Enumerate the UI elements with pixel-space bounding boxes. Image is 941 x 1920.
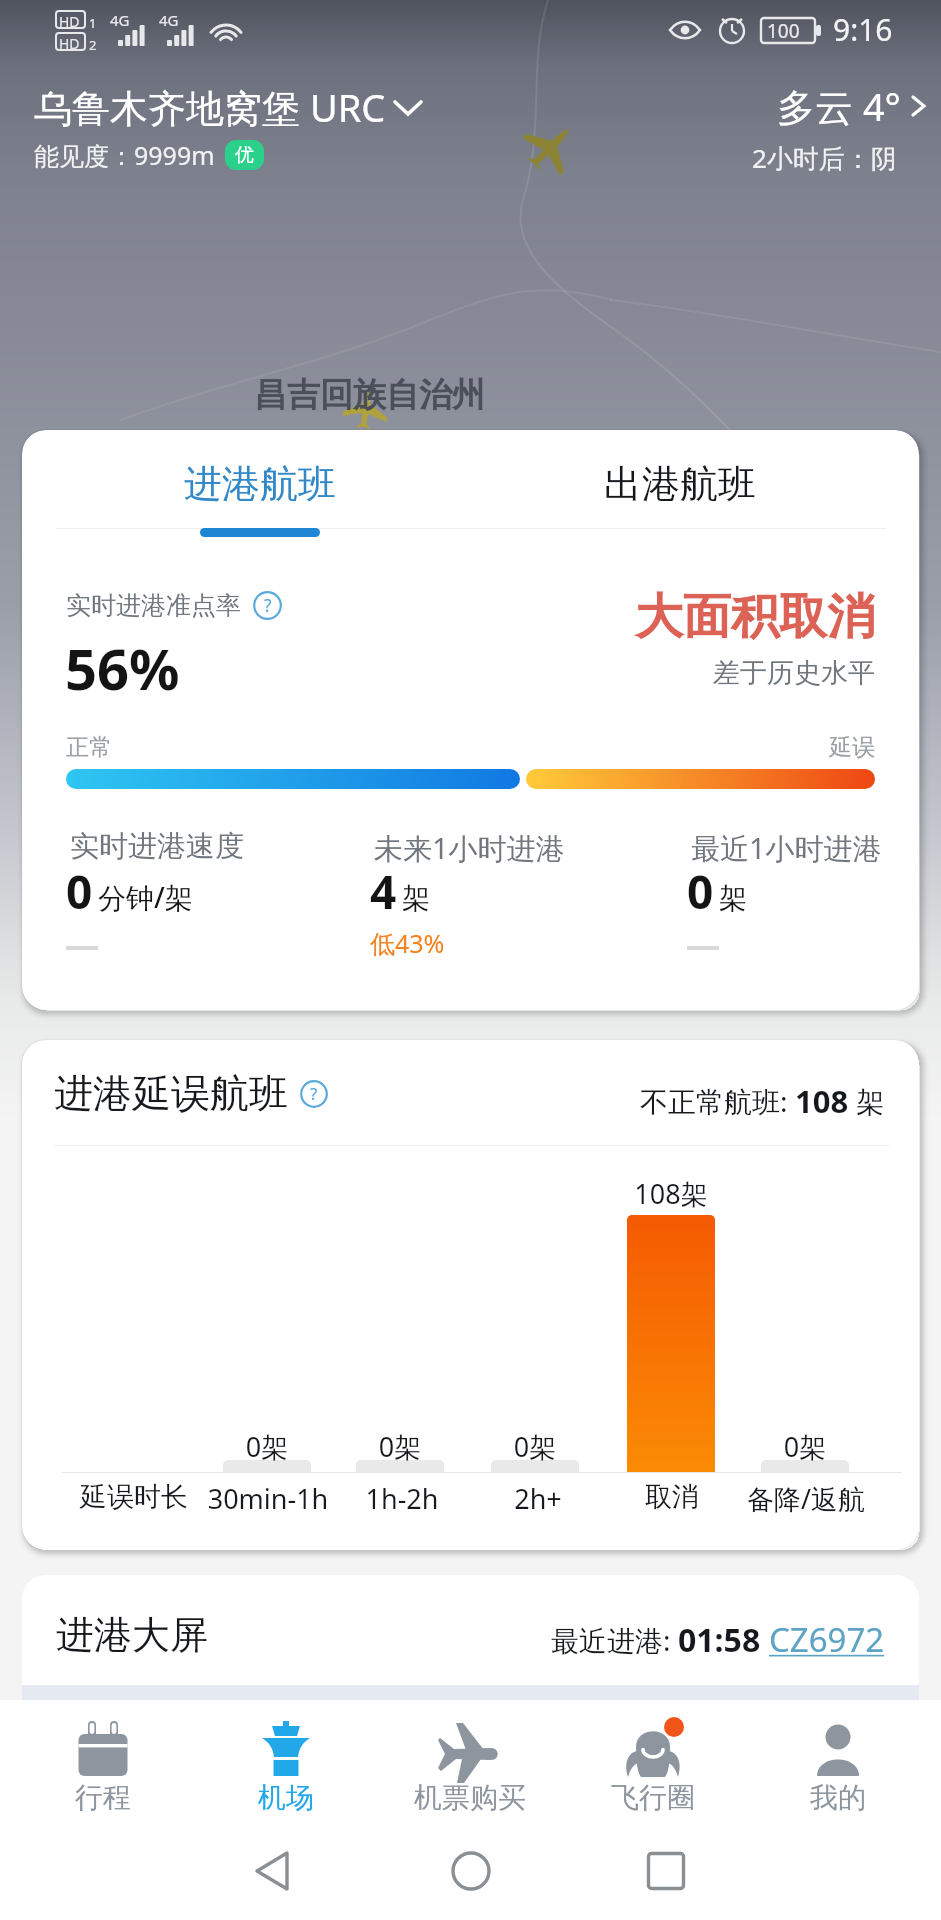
staticText: 4 [370, 860, 397, 923]
button[interactable] [9, 1700, 197, 1830]
staticText: 30min-1h [188, 1480, 348, 1517]
staticText: 最近进港: [551, 1621, 678, 1659]
staticText: 2h+ [458, 1480, 618, 1517]
staticText: 机场 [186, 1780, 386, 1815]
staticText: 能见度：9999m [34, 138, 215, 172]
staticText: 架 [719, 881, 747, 916]
button[interactable]: Home [436, 1836, 506, 1906]
staticText: 不正常航班: [640, 1082, 795, 1120]
staticText: 架 [849, 1082, 885, 1120]
staticText: 昌吉回族自治州 [254, 374, 485, 416]
staticText: 机票购买 [370, 1780, 570, 1815]
staticText: 108 [795, 1080, 849, 1122]
staticText: 1 [89, 14, 97, 32]
staticText: 进港航班 [180, 460, 340, 508]
staticText: HD [59, 34, 80, 53]
staticText: 飞行圈 [553, 1780, 753, 1815]
staticText: 延误时长 [54, 1480, 214, 1514]
staticText: 0架 [471, 1428, 599, 1465]
staticText: 差于历史水平 [575, 656, 875, 690]
staticText: 1h-2h [322, 1480, 482, 1517]
staticText: 2小时后：阴 [752, 140, 897, 176]
staticText: 0 [66, 860, 93, 923]
button[interactable] [376, 1700, 564, 1830]
staticText: HD [59, 12, 80, 31]
staticText: 进港大屏 [56, 1611, 208, 1659]
staticText: 低43% [370, 926, 445, 960]
button[interactable] [22, 430, 470, 530]
staticText: ? [264, 593, 272, 617]
staticText: 01:58 [678, 1618, 761, 1662]
staticText: 正常 [66, 733, 112, 762]
staticText: 未来1小时进港 [374, 828, 565, 868]
button[interactable]: Back [238, 1836, 308, 1906]
staticText: 9:16 [833, 9, 893, 50]
staticText: 多云 4° [777, 80, 901, 132]
staticText: 优 [235, 143, 254, 167]
staticText: 行程 [3, 1780, 203, 1815]
staticText: 4G [110, 10, 130, 30]
button[interactable] [744, 1700, 932, 1830]
staticText: 108架 [607, 1175, 735, 1212]
staticText: 进港延误航班 [54, 1069, 288, 1118]
staticText: 大面积取消 [575, 587, 875, 647]
staticText: 实时进港速度 [70, 828, 244, 865]
staticText: 分钟/架 [98, 878, 193, 916]
staticText: ? [310, 1082, 318, 1105]
staticText: 取消 [592, 1480, 752, 1514]
staticText: 56% [65, 630, 180, 706]
staticText: 最近1小时进港 [691, 828, 882, 868]
staticText: 4G [159, 10, 179, 30]
staticText: 延误 [780, 733, 875, 762]
staticText: 实时进港准点率 [66, 590, 241, 621]
staticText: 我的 [738, 1780, 938, 1815]
staticText: 100 [767, 18, 800, 44]
button[interactable] [471, 430, 919, 530]
staticText: CZ6972 [769, 1617, 885, 1662]
staticText: 2 [89, 36, 97, 54]
staticText: 0架 [203, 1428, 331, 1465]
staticText: 架 [402, 881, 430, 916]
button[interactable] [192, 1700, 380, 1830]
staticText: 备降/返航 [726, 1480, 886, 1517]
staticText: 0架 [741, 1428, 869, 1465]
staticText: 出港航班 [600, 460, 760, 508]
staticText: 0架 [336, 1428, 464, 1465]
button[interactable]: Recents [631, 1836, 701, 1906]
staticText: 0 [687, 860, 714, 923]
button[interactable] [559, 1700, 747, 1830]
staticText: 乌鲁木齐地窝堡 URC [34, 81, 386, 133]
